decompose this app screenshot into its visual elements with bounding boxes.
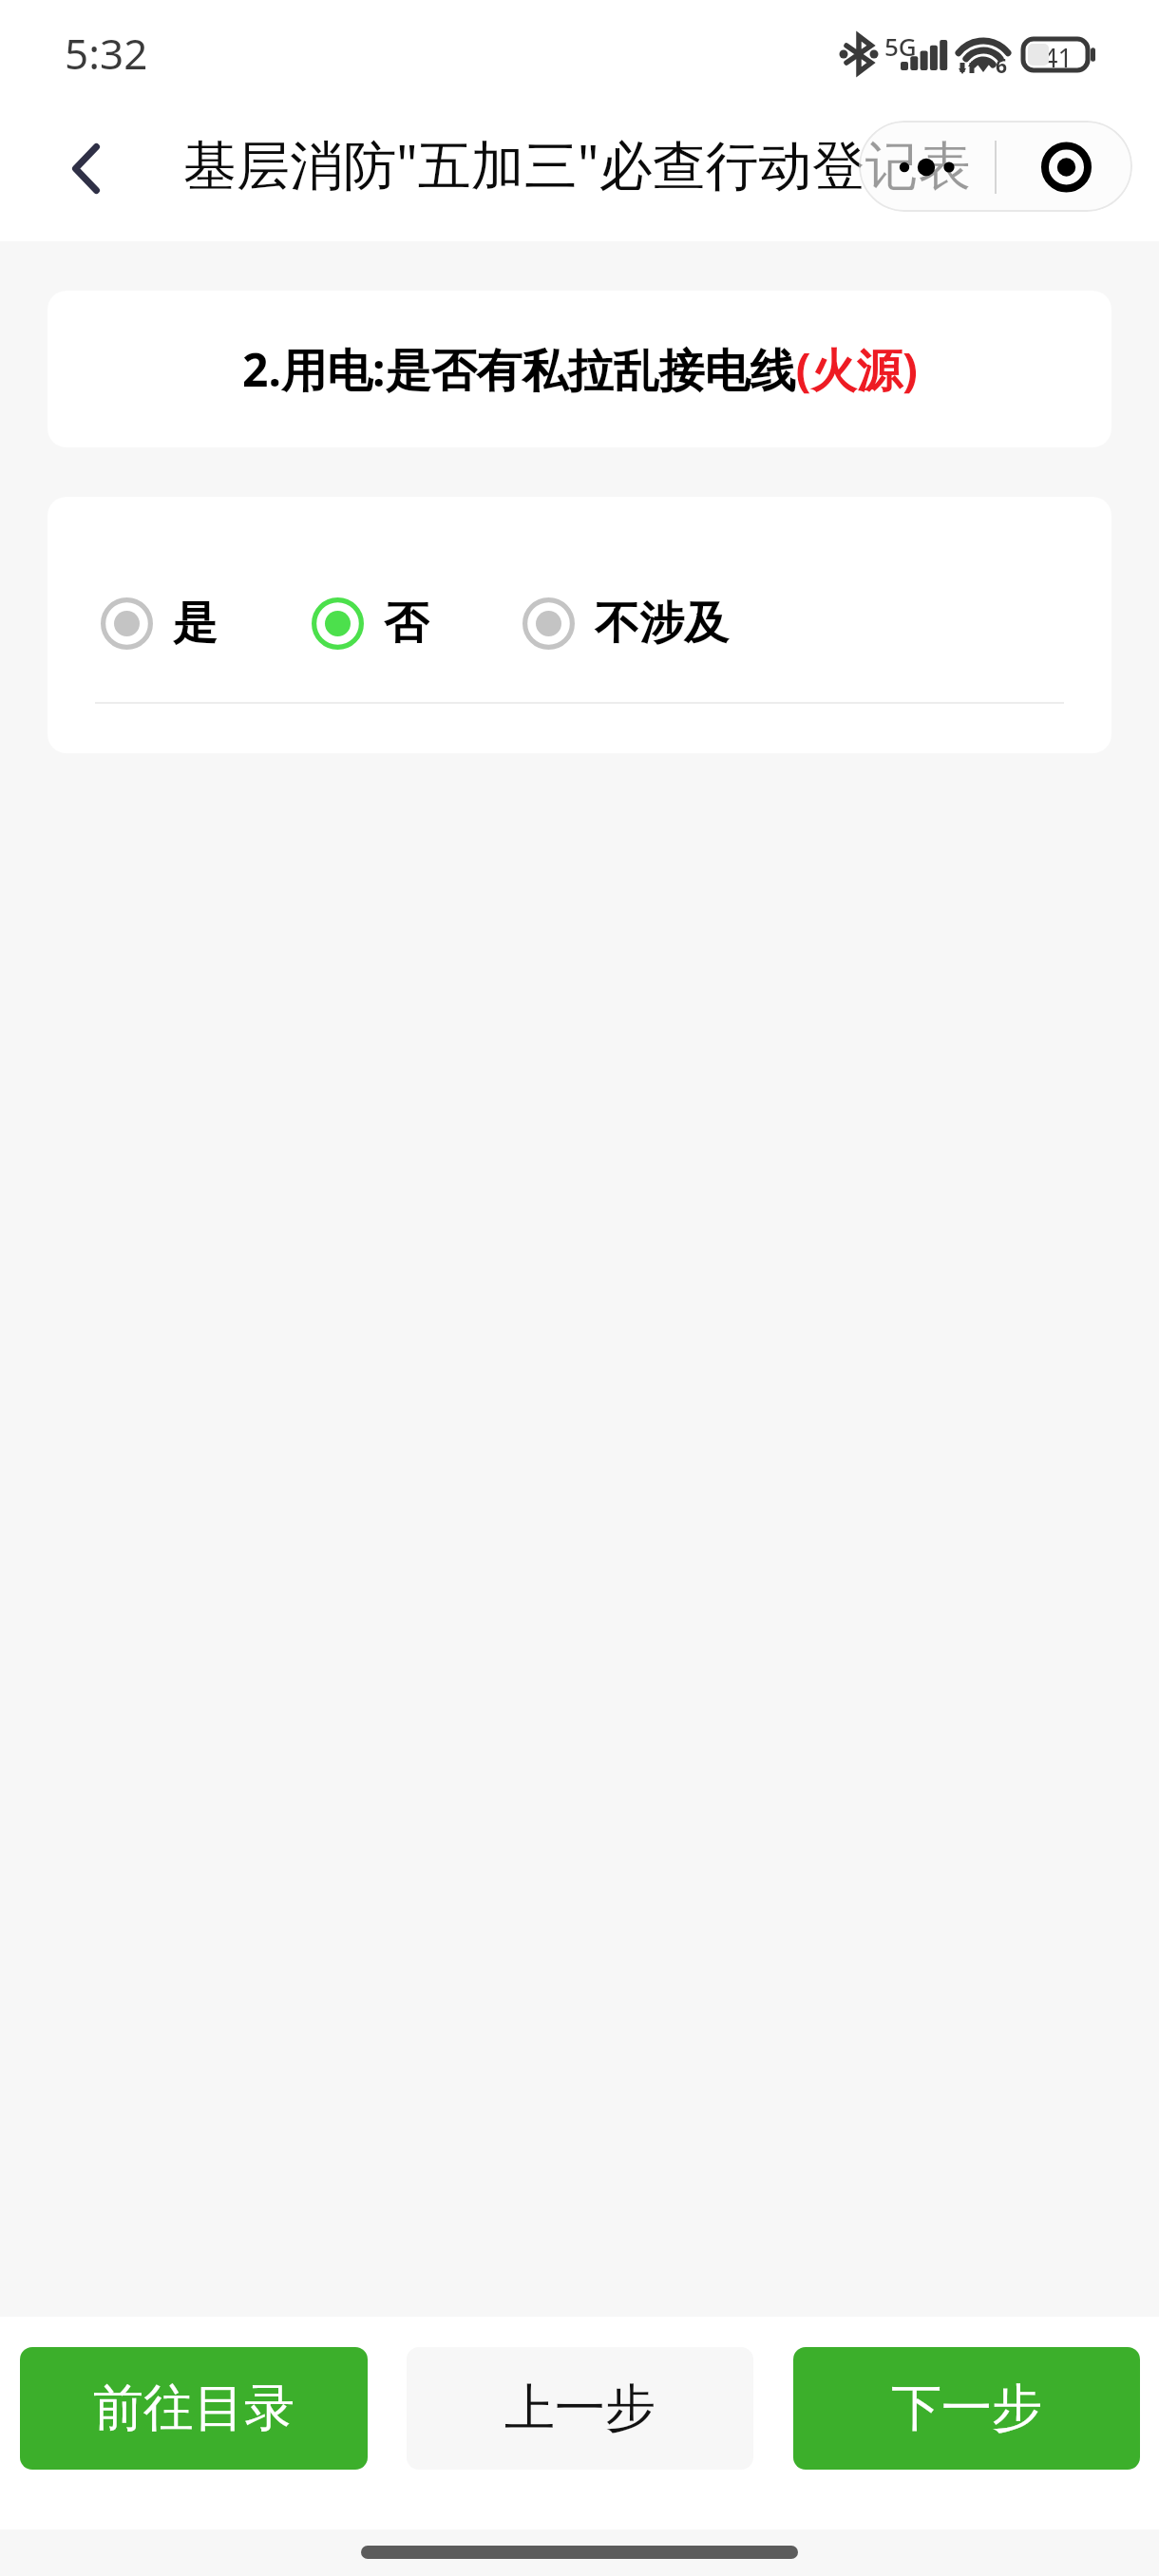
staticText: 上一步 [504, 2377, 655, 2440]
button[interactable]: More options [859, 121, 1132, 212]
staticText: 基层消防"五加三"必查行动登记表 [183, 127, 972, 199]
staticText: 是 [173, 596, 218, 652]
button[interactable]: 不涉及 [522, 578, 729, 669]
button[interactable]: Back [43, 124, 128, 212]
staticText: 2.用电:是否有私拉乱接电线(火源) [242, 338, 918, 401]
button[interactable]: 下一步 [793, 2347, 1140, 2470]
staticText: 5:32 [65, 25, 148, 82]
button[interactable]: 否 [312, 578, 428, 669]
staticText: 5G [884, 29, 917, 63]
staticText: 6 [996, 52, 1008, 80]
button[interactable]: 是 [101, 578, 218, 669]
staticText: 前往目录 [93, 2377, 294, 2440]
button[interactable]: 前往目录 [20, 2347, 368, 2470]
staticText: 不涉及 [595, 596, 729, 652]
button[interactable]: 上一步 [407, 2347, 753, 2470]
staticText: 41 [1043, 40, 1073, 75]
staticText: 下一步 [891, 2377, 1042, 2440]
staticText: 否 [384, 596, 428, 652]
